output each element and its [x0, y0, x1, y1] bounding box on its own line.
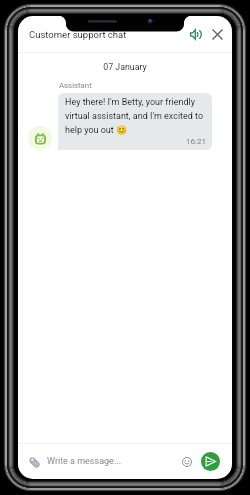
- button[interactable]: Attach file: [24, 452, 44, 472]
- staticText: Hey there! I'm Betty, your friendly virt…: [65, 97, 206, 135]
- button[interactable]: Sound: [184, 23, 206, 45]
- staticText: 16:21: [186, 137, 206, 146]
- staticText: Assistant: [59, 81, 92, 90]
- button[interactable]: Emoji: [177, 452, 197, 472]
- staticText: Write a message...: [47, 456, 122, 467]
- button[interactable]: Send: [201, 452, 220, 471]
- button[interactable]: Close: [206, 23, 228, 45]
- button[interactable]: Hey there! I'm Betty, your friendly virt…: [58, 93, 212, 150]
- staticText: 07 January: [18, 62, 232, 72]
- staticText: Customer support chat: [29, 29, 127, 40]
